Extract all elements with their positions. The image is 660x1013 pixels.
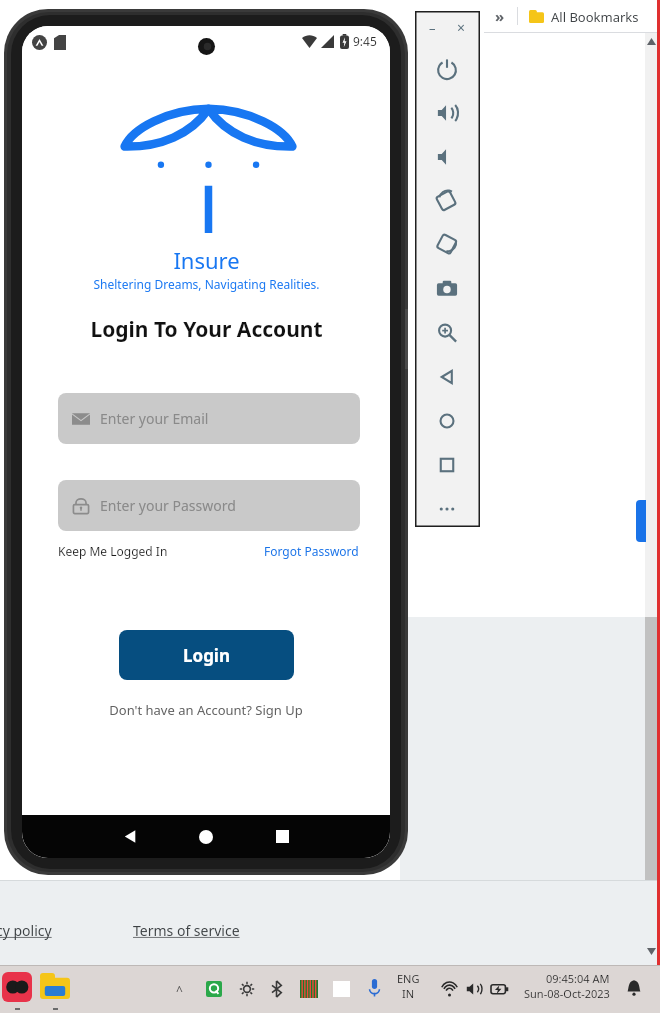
- button[interactable]: Battery: [491, 981, 509, 996]
- staticText: 9:45: [353, 33, 377, 49]
- button[interactable]: Volume up: [425, 93, 469, 133]
- staticText: Login: [183, 644, 231, 667]
- button[interactable]: File Explorer: [40, 973, 70, 999]
- button[interactable]: App: [2, 972, 32, 1002]
- button[interactable]: Email: [58, 393, 360, 444]
- staticText: Sheltering Dreams, Navigating Realities.: [93, 276, 320, 292]
- button[interactable]: Back: [100, 815, 160, 858]
- button[interactable]: Home: [176, 815, 236, 858]
- button[interactable]: Recent apps: [252, 815, 312, 858]
- button[interactable]: More: [425, 489, 469, 529]
- button[interactable]: Brightness: [239, 981, 255, 997]
- staticText: Sun-08-Oct-2023: [524, 986, 610, 1001]
- button[interactable]: Microphone: [368, 979, 381, 998]
- button[interactable]: Network: [441, 982, 458, 996]
- staticText: IN: [402, 986, 415, 1001]
- button[interactable]: Screenshot: [425, 269, 469, 309]
- button[interactable]: Forgot Password: [264, 543, 359, 559]
- button[interactable]: Quick settings: [206, 981, 222, 997]
- button[interactable]: 09:45:04 AM: [524, 971, 610, 1001]
- staticText: Enter your Email: [100, 409, 209, 428]
- button[interactable]: Bluetooth: [269, 980, 284, 998]
- button[interactable]: Password: [58, 480, 360, 531]
- staticText: All Bookmarks: [551, 8, 639, 26]
- button[interactable]: All Bookmarks: [529, 0, 639, 33]
- button[interactable]: Display: [300, 980, 318, 998]
- staticText: 09:45:04 AM: [546, 971, 610, 986]
- button[interactable]: Keep Me Logged In: [58, 543, 168, 559]
- button[interactable]: Volume down: [425, 137, 469, 177]
- staticText: Enter your Password: [100, 496, 236, 515]
- button[interactable]: »: [495, 6, 505, 26]
- button[interactable]: Power: [425, 49, 469, 89]
- button[interactable]: Login: [119, 630, 294, 680]
- button[interactable]: Don't have an Account? Sign Up: [109, 701, 303, 719]
- button[interactable]: cy policy: [0, 921, 52, 940]
- button[interactable]: ^: [176, 982, 192, 998]
- button[interactable]: Home: [425, 401, 469, 441]
- button[interactable]: Rotate left: [425, 181, 469, 221]
- button[interactable]: –: [429, 19, 445, 35]
- button[interactable]: Terms of service: [133, 921, 240, 940]
- button[interactable]: ENG: [397, 971, 420, 1001]
- button[interactable]: [636, 500, 646, 542]
- staticText: Insure: [173, 245, 240, 275]
- button[interactable]: Notifications: [626, 979, 642, 998]
- staticText: Login To Your Account: [90, 315, 323, 344]
- button[interactable]: Overview: [425, 445, 469, 485]
- button[interactable]: Rotate right: [425, 225, 469, 265]
- button[interactable]: Back: [425, 357, 469, 397]
- button[interactable]: Volume: [466, 982, 482, 996]
- button[interactable]: Zoom: [425, 313, 469, 353]
- staticText: ENG: [397, 971, 420, 986]
- button[interactable]: ×: [457, 18, 473, 34]
